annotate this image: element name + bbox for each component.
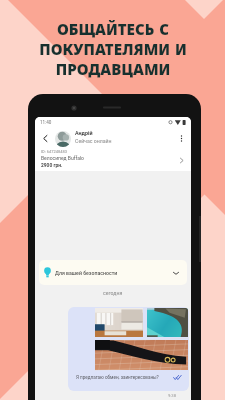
button[interactable]: Я предлагаю обмен, заинтересованы? <box>68 307 189 391</box>
staticText: Сейчас онлайн <box>75 138 112 144</box>
staticText: 9:38 <box>168 393 177 398</box>
staticText: 2900 грн. <box>41 162 63 168</box>
staticText: Для вашей безопасности <box>55 270 118 276</box>
staticText: Велосипед Buffalo <box>41 155 84 161</box>
staticText: Андрій <box>75 130 93 136</box>
button[interactable]: Для вашей безопасности <box>39 260 187 285</box>
button[interactable]: ID: 647248483 <box>35 149 191 171</box>
staticText: Я предлагаю обмен, заинтересованы? <box>76 375 159 380</box>
staticText: ID: 647248483 <box>41 149 67 154</box>
staticText: 11:40 <box>40 120 52 125</box>
staticText: ОБЩАЙТЕСЬ С ПОКУПАТЕЛЯМИ И ПРОДАВЦАМИ <box>39 19 187 79</box>
staticText: сегодня <box>103 290 123 296</box>
button[interactable]: Back <box>39 132 52 145</box>
button[interactable]: More options <box>175 132 188 145</box>
